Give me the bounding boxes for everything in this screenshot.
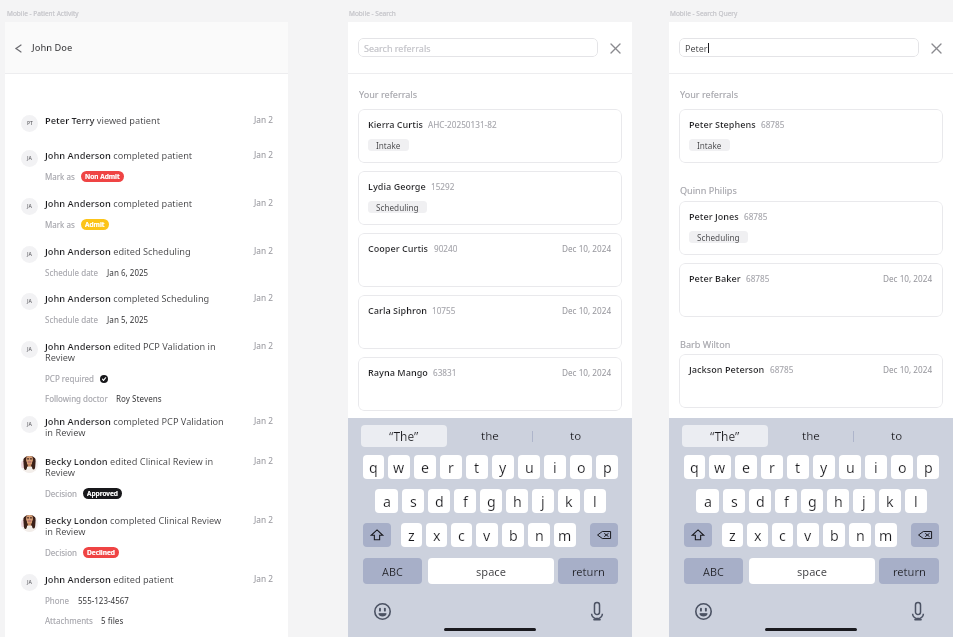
button[interactable]: o: [891, 455, 913, 479]
button[interactable]: r: [761, 455, 783, 479]
button[interactable]: q: [363, 455, 384, 479]
button[interactable]: space: [749, 558, 875, 584]
button[interactable]: w: [709, 455, 731, 479]
button[interactable]: PT: [5, 114, 288, 149]
button[interactable]: m: [554, 523, 576, 547]
button[interactable]: a: [696, 489, 719, 513]
button[interactable]: p: [917, 455, 939, 479]
button[interactable]: Peter Baker: [679, 263, 943, 317]
button[interactable]: e: [414, 455, 436, 479]
button[interactable]: r: [440, 455, 462, 479]
button[interactable]: ABC: [363, 558, 422, 584]
button[interactable]: i: [865, 455, 887, 479]
button[interactable]: y: [492, 455, 514, 479]
button[interactable]: Search referrals: [358, 38, 598, 57]
button[interactable]: Clear search: [606, 39, 624, 57]
button[interactable]: p: [596, 455, 618, 479]
button[interactable]: Emoji: [694, 602, 712, 620]
button[interactable]: t: [466, 455, 488, 479]
staticText: Search referrals: [364, 42, 431, 54]
button[interactable]: Peter Stephens: [679, 109, 943, 163]
staticText: JA: [27, 579, 32, 586]
button[interactable]: k: [879, 489, 901, 513]
button[interactable]: return: [558, 558, 618, 584]
button[interactable]: t: [787, 455, 809, 479]
button[interactable]: Rayna Mango: [358, 357, 622, 411]
button[interactable]: h: [506, 489, 528, 513]
button[interactable]: ABC: [684, 558, 743, 584]
button[interactable]: the: [768, 425, 853, 447]
button[interactable]: Cooper Curtis: [358, 233, 622, 287]
button[interactable]: Clear search: [927, 39, 945, 57]
button[interactable]: o: [570, 455, 592, 479]
button[interactable]: s: [723, 489, 745, 513]
button[interactable]: [358, 419, 622, 473]
button[interactable]: “The”: [361, 425, 447, 447]
button[interactable]: k: [558, 489, 580, 513]
button[interactable]: c: [772, 523, 793, 547]
button[interactable]: Becky London completed Clinical Review i…: [5, 514, 288, 573]
button[interactable]: b: [823, 523, 845, 547]
button[interactable]: the: [447, 425, 532, 447]
button[interactable]: w: [388, 455, 410, 479]
button[interactable]: Peter Jones: [679, 201, 943, 255]
button[interactable]: x: [747, 523, 768, 547]
button[interactable]: JA: [5, 197, 288, 245]
button[interactable]: u: [839, 455, 861, 479]
button[interactable]: q: [684, 455, 705, 479]
button[interactable]: x: [426, 523, 447, 547]
button[interactable]: Peter: [679, 38, 919, 57]
button[interactable]: return: [879, 558, 939, 584]
button[interactable]: Carla Siphron: [358, 295, 622, 349]
button[interactable]: Backspace: [590, 523, 618, 547]
button[interactable]: JA: [5, 415, 288, 455]
button[interactable]: a: [375, 489, 398, 513]
button[interactable]: b: [502, 523, 524, 547]
button[interactable]: c: [451, 523, 472, 547]
button[interactable]: Back: [9, 39, 27, 57]
button[interactable]: Shift: [363, 523, 391, 547]
button[interactable]: JA: [5, 245, 288, 292]
staticText: Scheduling: [376, 202, 419, 213]
button[interactable]: to: [533, 425, 618, 447]
button[interactable]: h: [827, 489, 849, 513]
button[interactable]: z: [722, 523, 743, 547]
button[interactable]: Becky London edited Clinical Review in R…: [5, 455, 288, 514]
button[interactable]: Backspace: [911, 523, 939, 547]
button[interactable]: u: [518, 455, 540, 479]
button[interactable]: space: [428, 558, 554, 584]
button[interactable]: l: [905, 489, 927, 513]
button[interactable]: g: [801, 489, 823, 513]
button[interactable]: n: [849, 523, 871, 547]
button[interactable]: v: [476, 523, 498, 547]
button[interactable]: l: [584, 489, 606, 513]
button[interactable]: y: [813, 455, 835, 479]
button[interactable]: “The”: [682, 425, 768, 447]
button[interactable]: v: [797, 523, 819, 547]
button[interactable]: m: [875, 523, 897, 547]
button[interactable]: s: [402, 489, 424, 513]
button[interactable]: Jackson Peterson: [679, 354, 943, 408]
button[interactable]: to: [854, 425, 939, 447]
button[interactable]: e: [735, 455, 757, 479]
button[interactable]: Shift: [684, 523, 712, 547]
button[interactable]: JA: [5, 340, 288, 415]
button[interactable]: Lydia George: [358, 171, 622, 225]
button[interactable]: i: [544, 455, 566, 479]
button[interactable]: n: [528, 523, 550, 547]
button[interactable]: f: [454, 489, 476, 513]
button[interactable]: j: [853, 489, 875, 513]
button[interactable]: Dictate: [909, 602, 927, 620]
button[interactable]: JA: [5, 149, 288, 197]
button[interactable]: j: [532, 489, 554, 513]
button[interactable]: Kierra Curtis: [358, 109, 622, 163]
button[interactable]: d: [749, 489, 771, 513]
button[interactable]: g: [480, 489, 502, 513]
button[interactable]: Emoji: [373, 602, 391, 620]
button[interactable]: Dictate: [588, 602, 606, 620]
button[interactable]: JA: [5, 573, 288, 633]
button[interactable]: d: [428, 489, 450, 513]
button[interactable]: JA: [5, 292, 288, 340]
button[interactable]: z: [401, 523, 422, 547]
button[interactable]: f: [775, 489, 797, 513]
